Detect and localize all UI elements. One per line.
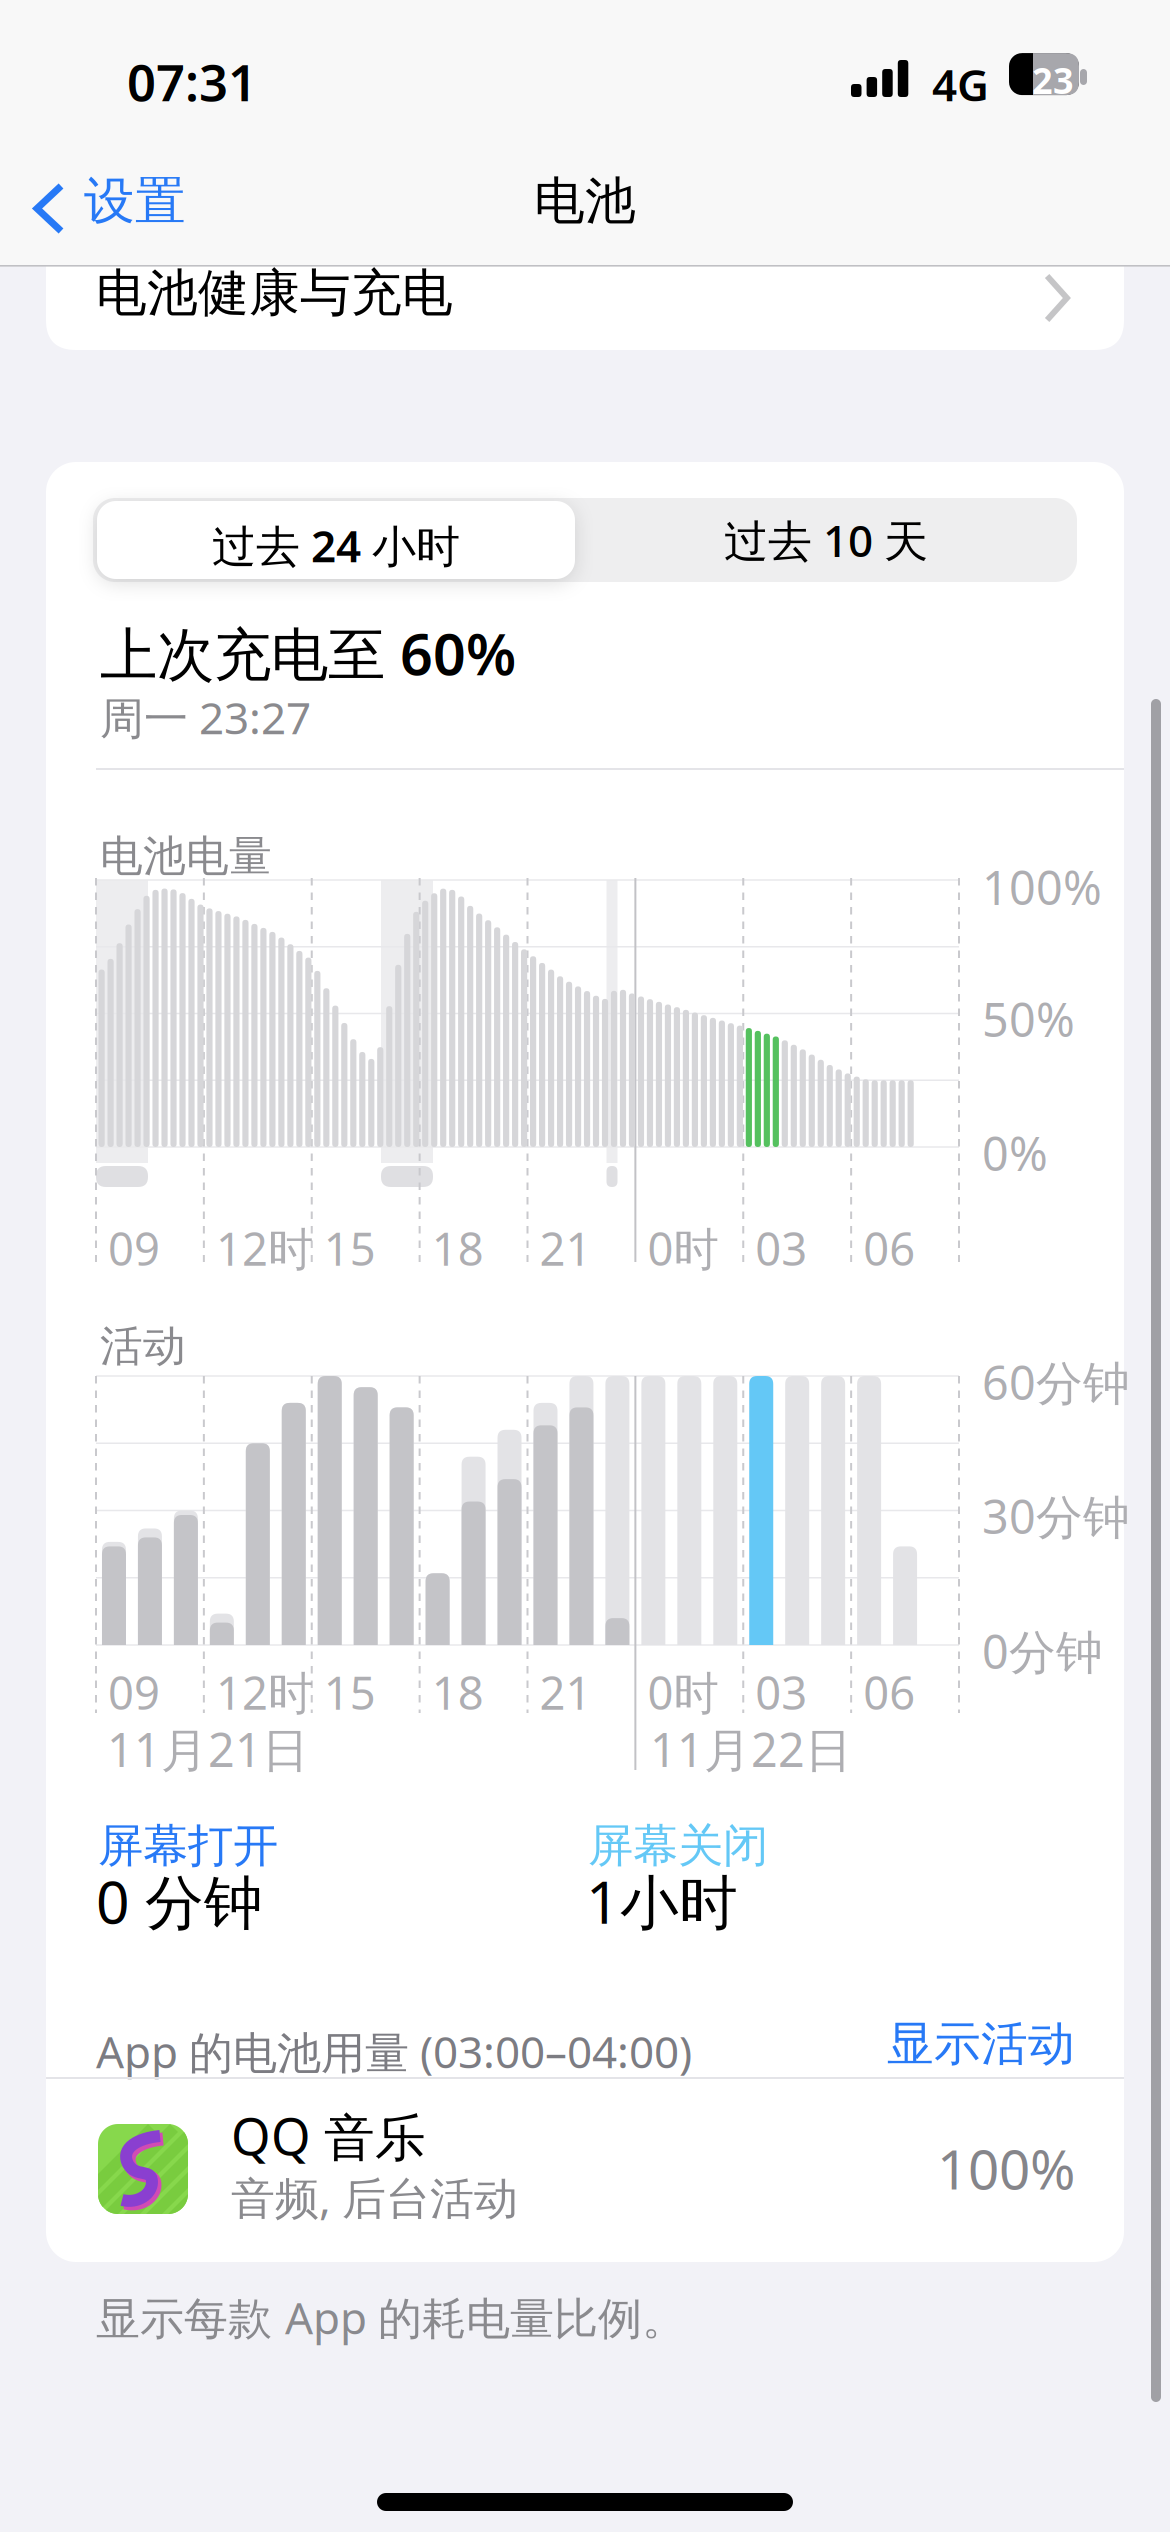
staticText: 100% [982, 856, 1102, 918]
staticText: 电池健康与充电 [96, 262, 453, 324]
staticText: 设置 [84, 170, 186, 232]
button[interactable]: Back to Settings [22, 176, 242, 240]
staticText: 21 [539, 1218, 591, 1278]
staticText: 4G [932, 55, 989, 113]
staticText: 显示每款 App 的耗电量比例。 [96, 2288, 686, 2346]
staticText: 07:31 [127, 48, 257, 115]
staticText: 12时 [216, 1218, 313, 1278]
staticText: 0时 [647, 1218, 718, 1278]
staticText: 12时 [216, 1662, 313, 1722]
staticText: 60分钟 [982, 1351, 1130, 1413]
staticText: QQ 音乐 [231, 2102, 426, 2169]
staticText: 0时 [647, 1662, 718, 1722]
button[interactable]: 过去 24 小时 [97, 501, 575, 579]
staticText: 11月22日 [650, 1718, 852, 1780]
staticText: 音频, 后台活动 [231, 2168, 518, 2226]
staticText: 过去 10 天 [724, 511, 928, 569]
staticText: 03 [755, 1218, 807, 1278]
staticText: 11月21日 [107, 1718, 309, 1780]
staticText: 30分钟 [982, 1485, 1130, 1547]
staticText: 0分钟 [982, 1620, 1103, 1682]
staticText: 21 [539, 1662, 591, 1722]
staticText: 过去 24 小时 [212, 516, 460, 574]
staticText: 06 [863, 1662, 915, 1722]
button[interactable]: QQ 音乐 [46, 2078, 1124, 2262]
staticText: 0 分钟 [96, 1862, 263, 1940]
staticText: 100% [937, 2132, 1075, 2205]
button[interactable]: 显示活动 [775, 2014, 1075, 2074]
staticText: 电池电量 [100, 830, 272, 882]
staticText: 屏幕关闭 [588, 1818, 768, 1874]
staticText: 09 [108, 1662, 160, 1722]
staticText: 周一 23:27 [100, 688, 311, 746]
staticText: 18 [432, 1662, 484, 1722]
staticText: 电池 [534, 170, 636, 232]
staticText: 上次充电至 60% [100, 615, 516, 691]
staticText: 18 [432, 1218, 484, 1278]
staticText: 15 [324, 1218, 376, 1278]
staticText: 15 [324, 1662, 376, 1722]
staticText: 03 [755, 1662, 807, 1722]
staticText: 06 [863, 1218, 915, 1278]
staticText: 50% [982, 988, 1075, 1050]
staticText: 1小时 [586, 1862, 738, 1940]
staticText: App 的电池用量 (03:00–04:00) [96, 2022, 692, 2081]
button[interactable]: 电池健康与充电 [46, 256, 1124, 350]
staticText: 09 [108, 1218, 160, 1278]
staticText: 0% [982, 1122, 1048, 1184]
button[interactable]: 过去 10 天 [581, 501, 1071, 579]
staticText: 屏幕打开 [98, 1818, 278, 1874]
staticText: 23 [1032, 56, 1074, 104]
staticText: 显示活动 [887, 2015, 1075, 2073]
staticText: 活动 [100, 1320, 186, 1372]
